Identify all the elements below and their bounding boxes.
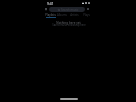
button[interactable]: Playlists — [45, 13, 56, 19]
staticText: 9:41 — [47, 1, 54, 5]
staticText: Albums — [57, 13, 67, 17]
staticText: Playlists — [45, 13, 56, 17]
staticText: Plays — [83, 13, 90, 17]
staticText: Nothing here yet — [56, 21, 81, 25]
button[interactable]: Artists — [68, 13, 80, 19]
button[interactable]: Open navigation menu — [43, 6, 49, 12]
button[interactable]: Plays — [80, 13, 92, 19]
staticText: Artists — [70, 13, 79, 17]
staticText: Saved music shows up here — [52, 23, 86, 27]
button[interactable]: Search music — [49, 7, 85, 12]
button[interactable]: Account — [85, 6, 91, 12]
staticText: Search music — [61, 8, 79, 12]
button[interactable]: Albums — [56, 13, 68, 19]
